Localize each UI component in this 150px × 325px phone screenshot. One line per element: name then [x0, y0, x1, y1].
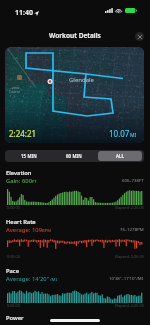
- staticText: ...view: [9, 85, 19, 90]
- staticText: ALL: [116, 153, 125, 159]
- staticText: 11:40: [15, 8, 33, 18]
- staticText: 0:00:00: [7, 254, 20, 259]
- staticText: Elapsed: 2:26:03: [115, 254, 144, 259]
- staticText: 76–127BPM: [120, 226, 144, 232]
- staticText: Heart Rate: [6, 218, 36, 226]
- staticText: 600: [22, 177, 32, 185]
- staticText: Course: [9, 89, 21, 94]
- button[interactable]: ALL: [98, 151, 142, 161]
- staticText: FT: [32, 179, 37, 185]
- button[interactable]: Route map: [5, 47, 144, 143]
- staticText: 109: [32, 226, 42, 234]
- staticText: Average:: [6, 275, 32, 283]
- staticText: 10.07: [109, 128, 130, 139]
- staticText: Average:: [6, 226, 32, 234]
- staticText: 14'20": [32, 275, 50, 283]
- staticText: Power: [6, 314, 24, 322]
- button[interactable]: 60 MIN: [52, 151, 96, 161]
- staticText: 15 MIN: [21, 153, 37, 159]
- staticText: MI: [130, 132, 137, 139]
- staticText: Gain:: [6, 177, 22, 185]
- staticText: Glendale: [69, 76, 94, 84]
- button[interactable]: Close: [135, 32, 144, 41]
- staticText: Elapsed: 2:26:03: [115, 303, 144, 308]
- staticText: 10'38"–17'10"/MI: [109, 275, 144, 281]
- staticText: 606–738FT: [122, 177, 144, 183]
- staticText: Workout Details: [49, 31, 101, 40]
- staticText: Pace: [6, 267, 20, 275]
- staticText: 0:00:00: [7, 303, 20, 308]
- staticText: 2:24:21: [9, 128, 37, 139]
- button[interactable]: 15 MIN: [7, 151, 50, 161]
- staticText: BPM: [42, 228, 52, 234]
- staticText: Elevation: [6, 169, 32, 177]
- staticText: /MI: [50, 277, 57, 283]
- staticText: Elapsed: 2:26:03: [115, 205, 144, 210]
- staticText: 0:00:00: [7, 205, 20, 210]
- staticText: 60 MIN: [66, 153, 82, 159]
